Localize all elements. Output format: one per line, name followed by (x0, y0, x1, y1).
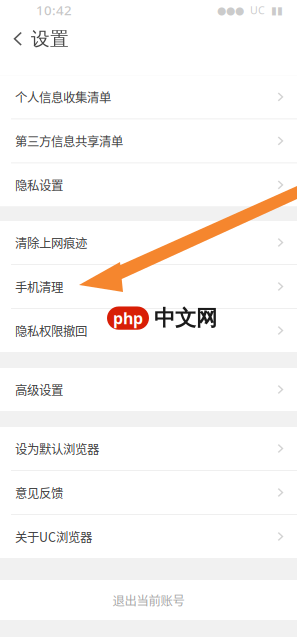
staticText: php (113, 307, 143, 329)
staticText: 关于UC浏览器 (15, 527, 92, 545)
button[interactable]: 个人信息收集清单 (0, 75, 297, 118)
staticText: 设为默认浏览器 (15, 439, 99, 457)
button[interactable]: 意见反馈 (0, 471, 297, 514)
staticText: ●●● UC ▮▮ (217, 3, 283, 17)
staticText: 清除上网痕迹 (15, 233, 87, 251)
staticText: 中文网 (154, 305, 217, 331)
button[interactable]: 手机清理 (0, 265, 297, 308)
button[interactable]: 高级设置 (0, 368, 297, 411)
button[interactable]: 退出当前账号 (0, 580, 297, 620)
button[interactable]: 隐私设置 (0, 163, 297, 206)
button[interactable]: 设为默认浏览器 (0, 427, 297, 470)
button[interactable]: 隐私权限撤回 (0, 309, 297, 352)
staticText: 第三方信息共享清单 (15, 132, 123, 150)
staticText: 设置 (31, 27, 69, 50)
staticText: 个人信息收集清单 (15, 88, 111, 106)
staticText: 10:42 (36, 1, 72, 19)
button[interactable]: 第三方信息共享清单 (0, 119, 297, 162)
staticText: 手机清理 (15, 277, 63, 295)
button[interactable]: 关于UC浏览器 (0, 515, 297, 558)
staticText: 退出当前账号 (112, 591, 184, 609)
button[interactable]: 返回 (0, 20, 31, 58)
staticText: 意见反馈 (15, 483, 63, 501)
staticText: 高级设置 (15, 380, 63, 398)
staticText: 隐私权限撤回 (15, 321, 87, 339)
button[interactable]: 清除上网痕迹 (0, 221, 297, 264)
staticText: 隐私设置 (15, 176, 63, 194)
